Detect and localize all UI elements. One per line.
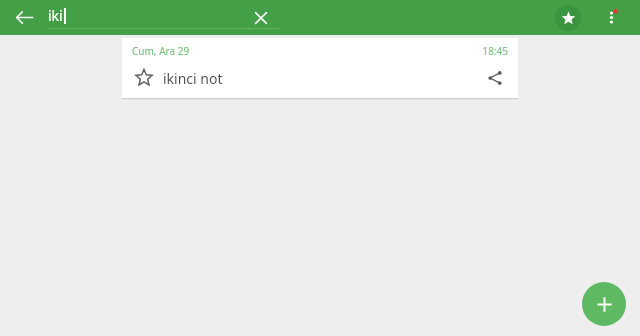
button[interactable]: Cum, Ara 29: [122, 38, 518, 98]
button[interactable]: Navigate back: [6, 0, 42, 35]
button[interactable]: iki: [48, 0, 248, 30]
button[interactable]: Star note: [130, 64, 158, 92]
staticText: Cum, Ara 29: [132, 44, 190, 58]
staticText: iki: [48, 6, 63, 25]
staticText: 18:45: [482, 44, 508, 58]
button[interactable]: More options: [595, 0, 627, 35]
button[interactable]: Clear search: [245, 0, 277, 35]
button[interactable]: Show starred notes: [550, 0, 586, 35]
button[interactable]: Share note: [482, 65, 508, 91]
button[interactable]: Add note: [582, 282, 626, 326]
staticText: ikinci not: [163, 69, 223, 88]
